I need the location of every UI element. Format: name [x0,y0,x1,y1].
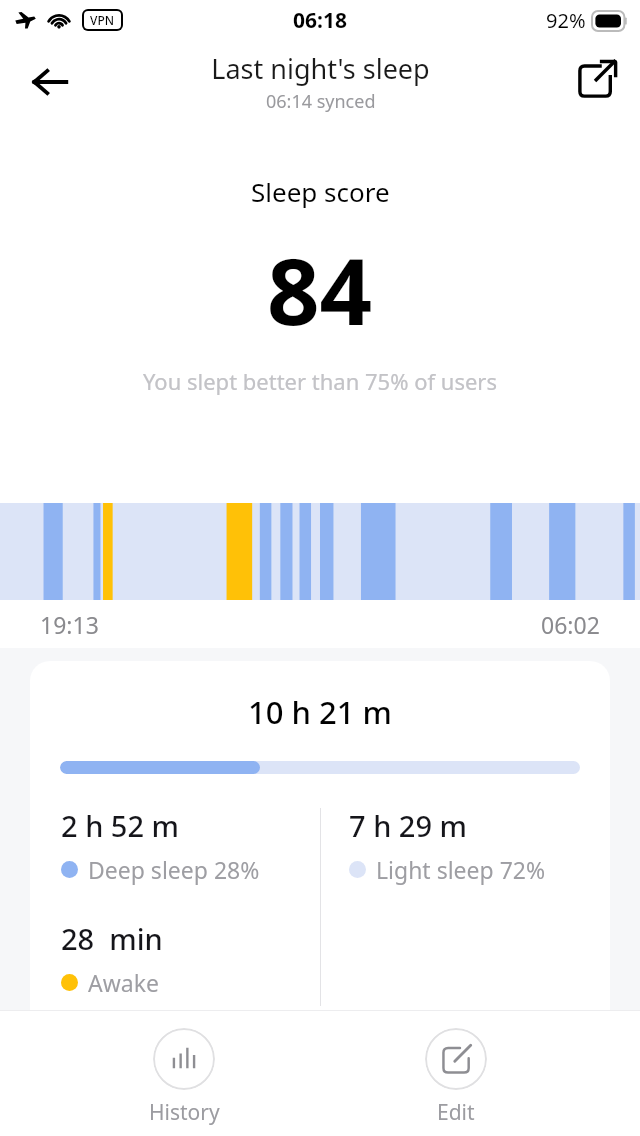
staticText: 06:18 [293,6,347,35]
button[interactable]: Share [570,52,624,106]
staticText: 06:02 [541,609,600,640]
staticText: 84 [267,227,373,352]
staticText: 7 h 29 m [349,806,468,845]
button[interactable]: 10 h 21 m [30,661,610,1046]
button[interactable]: Back [22,54,78,110]
staticText: 10 h 21 m [30,691,610,733]
button[interactable]: Edit [396,1010,516,1127]
staticText: Edit [437,1098,475,1127]
staticText: VPN [90,12,115,28]
staticText: History [149,1098,220,1127]
staticText: Awake [88,967,159,998]
staticText: 92% [546,7,586,34]
staticText: 19:13 [40,609,99,640]
button[interactable]: History [124,1010,244,1127]
staticText: You slept better than 75% of users [143,366,497,396]
staticText: 06:14 synced [266,89,376,114]
staticText: Last night's sleep [211,50,430,87]
staticText: Light sleep 72% [376,854,546,885]
staticText: 28 min [61,919,163,958]
staticText: 2 h 52 m [61,806,180,845]
staticText: Deep sleep 28% [88,854,260,885]
staticText: Sleep score [251,174,390,209]
